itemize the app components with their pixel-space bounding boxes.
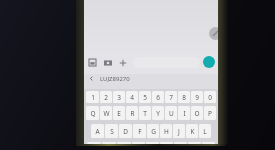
button[interactable]: D — [119, 124, 132, 138]
staticText: Y — [156, 109, 160, 118]
button[interactable]: S — [105, 124, 118, 138]
button[interactable]: J — [173, 124, 185, 138]
button[interactable]: 9 — [191, 91, 203, 103]
staticText: U — [169, 109, 174, 118]
button[interactable]: A — [91, 124, 104, 138]
button[interactable]: K — [186, 124, 198, 138]
button[interactable]: 7 — [165, 91, 177, 103]
button[interactable]: O — [191, 106, 203, 120]
button[interactable]: 3 — [113, 91, 125, 103]
button[interactable]: 8 — [178, 91, 190, 103]
staticText: I — [183, 109, 186, 118]
button[interactable]: Back — [87, 74, 96, 83]
staticText: H — [164, 127, 169, 136]
staticText: 7 — [169, 93, 173, 102]
button[interactable]: T — [139, 106, 151, 120]
button[interactable]: Edit — [209, 27, 222, 40]
staticText: T — [143, 109, 147, 118]
staticText: D — [123, 127, 128, 136]
staticText: R — [130, 109, 135, 118]
button[interactable]: E — [113, 106, 125, 120]
staticText: G — [151, 127, 156, 136]
button[interactable]: W — [100, 106, 112, 120]
staticText: S — [110, 127, 114, 136]
staticText: A — [95, 127, 100, 136]
button[interactable]: LUJZ89270 — [100, 75, 130, 83]
staticText: J — [178, 127, 180, 136]
button[interactable]: 5 — [139, 91, 151, 103]
button[interactable]: 1 — [86, 91, 99, 103]
staticText: 8 — [182, 93, 186, 102]
button[interactable]: H — [160, 124, 172, 138]
staticText: O — [194, 109, 200, 118]
staticText: 1 — [91, 93, 95, 102]
button[interactable]: Q — [86, 106, 99, 120]
staticText: 5 — [143, 93, 147, 102]
button[interactable]: 2 — [100, 91, 112, 103]
staticText: K — [190, 127, 195, 136]
button[interactable]: More options — [117, 57, 128, 68]
staticText: 2 — [104, 93, 108, 102]
staticText: E — [117, 109, 121, 118]
button[interactable]: Send — [203, 56, 215, 68]
staticText: Q — [90, 109, 96, 118]
staticText: L — [203, 127, 207, 136]
staticText: 0 — [208, 93, 212, 102]
button[interactable]: L — [199, 124, 211, 138]
staticText: 3 — [117, 93, 121, 102]
button[interactable]: 6 — [152, 91, 164, 103]
button[interactable]: I — [178, 106, 190, 120]
button[interactable]: Gallery — [87, 57, 98, 68]
button[interactable]: F — [133, 124, 146, 138]
staticText: 4 — [130, 93, 134, 102]
button[interactable]: U — [165, 106, 177, 120]
button[interactable]: Camera — [102, 57, 113, 68]
button[interactable]: G — [147, 124, 159, 138]
button[interactable]: 0 — [204, 91, 216, 103]
staticText: F — [138, 127, 142, 136]
button[interactable]: P — [204, 106, 216, 120]
staticText: P — [208, 109, 212, 118]
staticText: W — [103, 109, 110, 118]
button[interactable]: Y — [152, 106, 164, 120]
button[interactable]: 4 — [126, 91, 138, 103]
staticText: 6 — [156, 93, 160, 102]
button[interactable]: R — [126, 106, 138, 120]
staticText: 9 — [195, 93, 199, 102]
